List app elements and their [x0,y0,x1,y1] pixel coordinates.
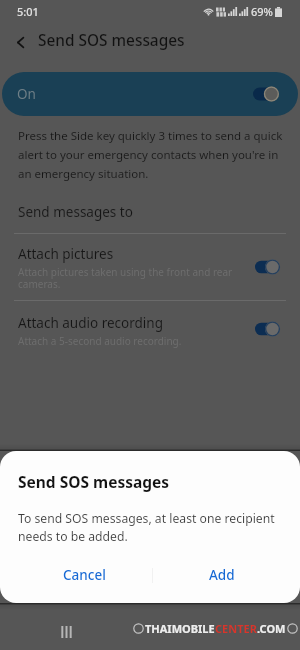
button[interactable]: Toggle [255,259,280,275]
staticText: Send SOS messages [38,30,185,51]
staticText: THAIMOBILE [145,621,215,636]
staticText: CENTER [215,621,257,636]
staticText: Attach pictures [18,245,114,263]
staticText: Add [209,566,235,584]
button[interactable]: On [2,72,298,116]
staticText: 5:01 [17,4,39,19]
button[interactable]: Toggle [255,321,280,337]
staticText: To send SOS messages, at least one recip… [18,510,286,544]
staticText: Attach audio recording [18,314,163,332]
button[interactable]: Recent apps [52,618,80,646]
staticText: Press the Side key quickly 3 times to se… [18,128,284,181]
staticText: Send messages to [18,203,133,221]
staticText: Cancel [63,566,106,584]
button[interactable]: Attach audio recording [0,301,300,356]
button[interactable]: Cancel [16,557,152,593]
button[interactable]: Back [7,29,33,55]
button[interactable]: Attach pictures [0,234,300,300]
staticText: Send SOS messages [18,471,170,492]
staticText: Attach pictures taken using the front an… [18,265,244,291]
staticText: On [17,85,36,103]
staticText: .COM [257,621,286,636]
button[interactable]: Add [153,557,290,593]
staticText: 69% [251,4,273,19]
staticText: Attach a 5-second audio recording. [18,334,244,348]
